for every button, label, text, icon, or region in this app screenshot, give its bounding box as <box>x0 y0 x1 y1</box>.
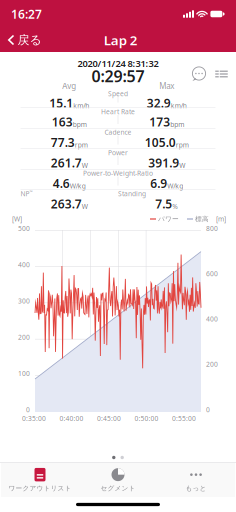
staticText: 77.3 <box>51 134 75 150</box>
staticText: 400 <box>18 260 30 269</box>
button[interactable]: Details <box>215 68 228 80</box>
staticText: Power <box>108 148 128 157</box>
staticText: 800 <box>206 224 218 233</box>
staticText: 標高 <box>195 215 209 223</box>
staticText: 32.9 <box>147 95 171 111</box>
staticText: Cadence <box>104 128 131 137</box>
staticText: 173 <box>149 114 170 130</box>
staticText: km/h <box>73 101 89 110</box>
staticText: NP <box>20 189 29 198</box>
button[interactable]: もっと <box>157 463 235 497</box>
staticText: 0:50:00 <box>134 414 158 423</box>
staticText: 2020/11/24 8:31:32 <box>77 57 158 70</box>
staticText: 600 <box>206 269 218 278</box>
staticText: rpm <box>176 141 189 149</box>
staticText: パワー <box>158 215 179 223</box>
staticText: ワークアウトリスト <box>8 484 71 492</box>
staticText: 391.9 <box>148 155 179 171</box>
staticText: 4.6 <box>53 175 70 191</box>
staticText: 0:40:00 <box>59 414 83 423</box>
staticText: 0 <box>26 405 30 414</box>
button[interactable]: ワークアウトリスト <box>1 463 79 497</box>
staticText: ™ <box>29 189 32 195</box>
staticText: 163 <box>52 114 73 130</box>
staticText: [W] <box>12 215 22 223</box>
staticText: bpm <box>170 120 184 129</box>
staticText: Lap 2 <box>104 31 138 49</box>
staticText: rpm <box>75 141 88 149</box>
staticText: 0:29:57 <box>91 65 144 87</box>
staticText: Max <box>159 81 174 91</box>
staticText: 0 <box>206 405 210 414</box>
staticText: 戻る <box>17 33 41 47</box>
button[interactable]: セグメント <box>79 463 157 497</box>
staticText: [m] <box>216 215 226 223</box>
staticText: 0:35:00 <box>22 414 46 423</box>
staticText: セグメント <box>100 484 135 492</box>
staticText: 16:27 <box>11 6 42 22</box>
staticText: 200 <box>206 360 218 369</box>
staticText: 100 <box>18 369 30 378</box>
button[interactable]: 戻る <box>0 28 49 52</box>
staticText: Standing <box>118 189 146 198</box>
staticText: Avg <box>62 81 76 91</box>
staticText: 200 <box>18 333 30 342</box>
staticText: bpm <box>73 120 87 129</box>
staticText: km/h <box>171 101 187 110</box>
staticText: 0:55:00 <box>172 414 196 423</box>
staticText: 400 <box>206 315 218 323</box>
staticText: % <box>172 202 178 211</box>
staticText: もっと <box>185 484 206 492</box>
staticText: 261.7 <box>51 155 82 171</box>
staticText: Heart Rate <box>101 107 135 116</box>
staticText: 263.7 <box>51 196 82 212</box>
staticText: Power-to-Weight-Ratio <box>83 169 153 178</box>
staticText: W/kg <box>167 182 183 190</box>
staticText: W <box>82 202 88 211</box>
staticText: 7.5 <box>155 196 172 212</box>
staticText: W/kg <box>70 182 86 190</box>
staticText: W <box>82 161 88 170</box>
staticText: W <box>179 161 185 170</box>
staticText: 15.1 <box>49 95 73 111</box>
staticText: 300 <box>18 296 30 305</box>
staticText: Speed <box>108 89 128 98</box>
staticText: 105.0 <box>145 134 176 150</box>
staticText: 500 <box>18 224 30 233</box>
staticText: 0:45:00 <box>97 414 121 423</box>
staticText: 6.9 <box>150 175 167 191</box>
button[interactable]: Comments <box>190 66 208 82</box>
